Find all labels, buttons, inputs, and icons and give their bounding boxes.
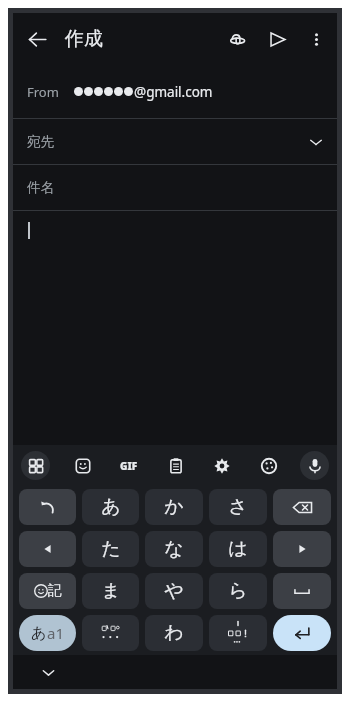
staticText: わ xyxy=(164,621,184,645)
button[interactable]: More options xyxy=(297,20,335,58)
button[interactable]: Back xyxy=(17,19,57,59)
button[interactable]: Attach file xyxy=(217,19,257,59)
button[interactable]: さ xyxy=(209,489,267,525)
button[interactable]: From xyxy=(13,65,337,118)
button[interactable]: GIF xyxy=(114,451,143,480)
staticText: な xyxy=(164,537,184,561)
staticText: た xyxy=(101,537,121,561)
button[interactable] xyxy=(13,211,337,445)
button[interactable]: Settings xyxy=(207,451,236,480)
button[interactable]: Switch input mode xyxy=(19,615,76,651)
button[interactable]: Emoji and symbols xyxy=(19,573,76,609)
button[interactable]: Clipboard xyxy=(161,451,190,480)
button[interactable]: は xyxy=(209,531,267,567)
staticText: 件名 xyxy=(27,179,54,196)
staticText: は xyxy=(228,537,248,561)
staticText: ら xyxy=(228,579,248,603)
button[interactable]: Hide keyboard xyxy=(35,659,61,685)
button[interactable]: Send xyxy=(257,19,297,59)
staticText: ま xyxy=(101,579,121,603)
button[interactable]: Themes xyxy=(254,451,283,480)
staticText: さ xyxy=(228,495,248,519)
button[interactable]: Voice input xyxy=(300,451,329,480)
button[interactable]: か xyxy=(145,489,203,525)
button[interactable]: 件名 xyxy=(13,165,337,210)
staticText: 作成 xyxy=(65,27,103,51)
button[interactable]: Punctuation xyxy=(209,615,267,651)
staticText: 記 xyxy=(48,582,62,600)
button[interactable]: Enter xyxy=(273,615,331,651)
staticText: あ xyxy=(101,495,121,519)
staticText: From xyxy=(27,83,59,101)
button[interactable]: ま xyxy=(82,573,139,609)
staticText: あ xyxy=(31,624,47,643)
button[interactable]: わ xyxy=(145,615,203,651)
button[interactable]: Cursor right xyxy=(273,531,331,567)
staticText: @gmail.com xyxy=(134,83,213,101)
button[interactable]: 宛先 xyxy=(13,119,337,164)
button[interactable]: な xyxy=(145,531,203,567)
button[interactable]: Cursor left xyxy=(19,531,76,567)
button[interactable]: Apps xyxy=(21,451,50,480)
button[interactable]: ら xyxy=(209,573,267,609)
staticText: か xyxy=(164,495,184,519)
button[interactable]: Space xyxy=(273,573,331,609)
staticText: GIF xyxy=(120,459,138,473)
staticText: や xyxy=(164,579,184,603)
button[interactable]: Stickers xyxy=(68,451,97,480)
button[interactable]: Undo xyxy=(19,489,76,525)
button[interactable]: Dakuten and small kana xyxy=(82,615,139,651)
button[interactable]: Delete xyxy=(273,489,331,525)
button[interactable]: た xyxy=(82,531,139,567)
staticText: 宛先 xyxy=(27,133,54,150)
button[interactable]: や xyxy=(145,573,203,609)
staticText: a1 xyxy=(47,623,64,643)
button[interactable]: あ xyxy=(82,489,139,525)
